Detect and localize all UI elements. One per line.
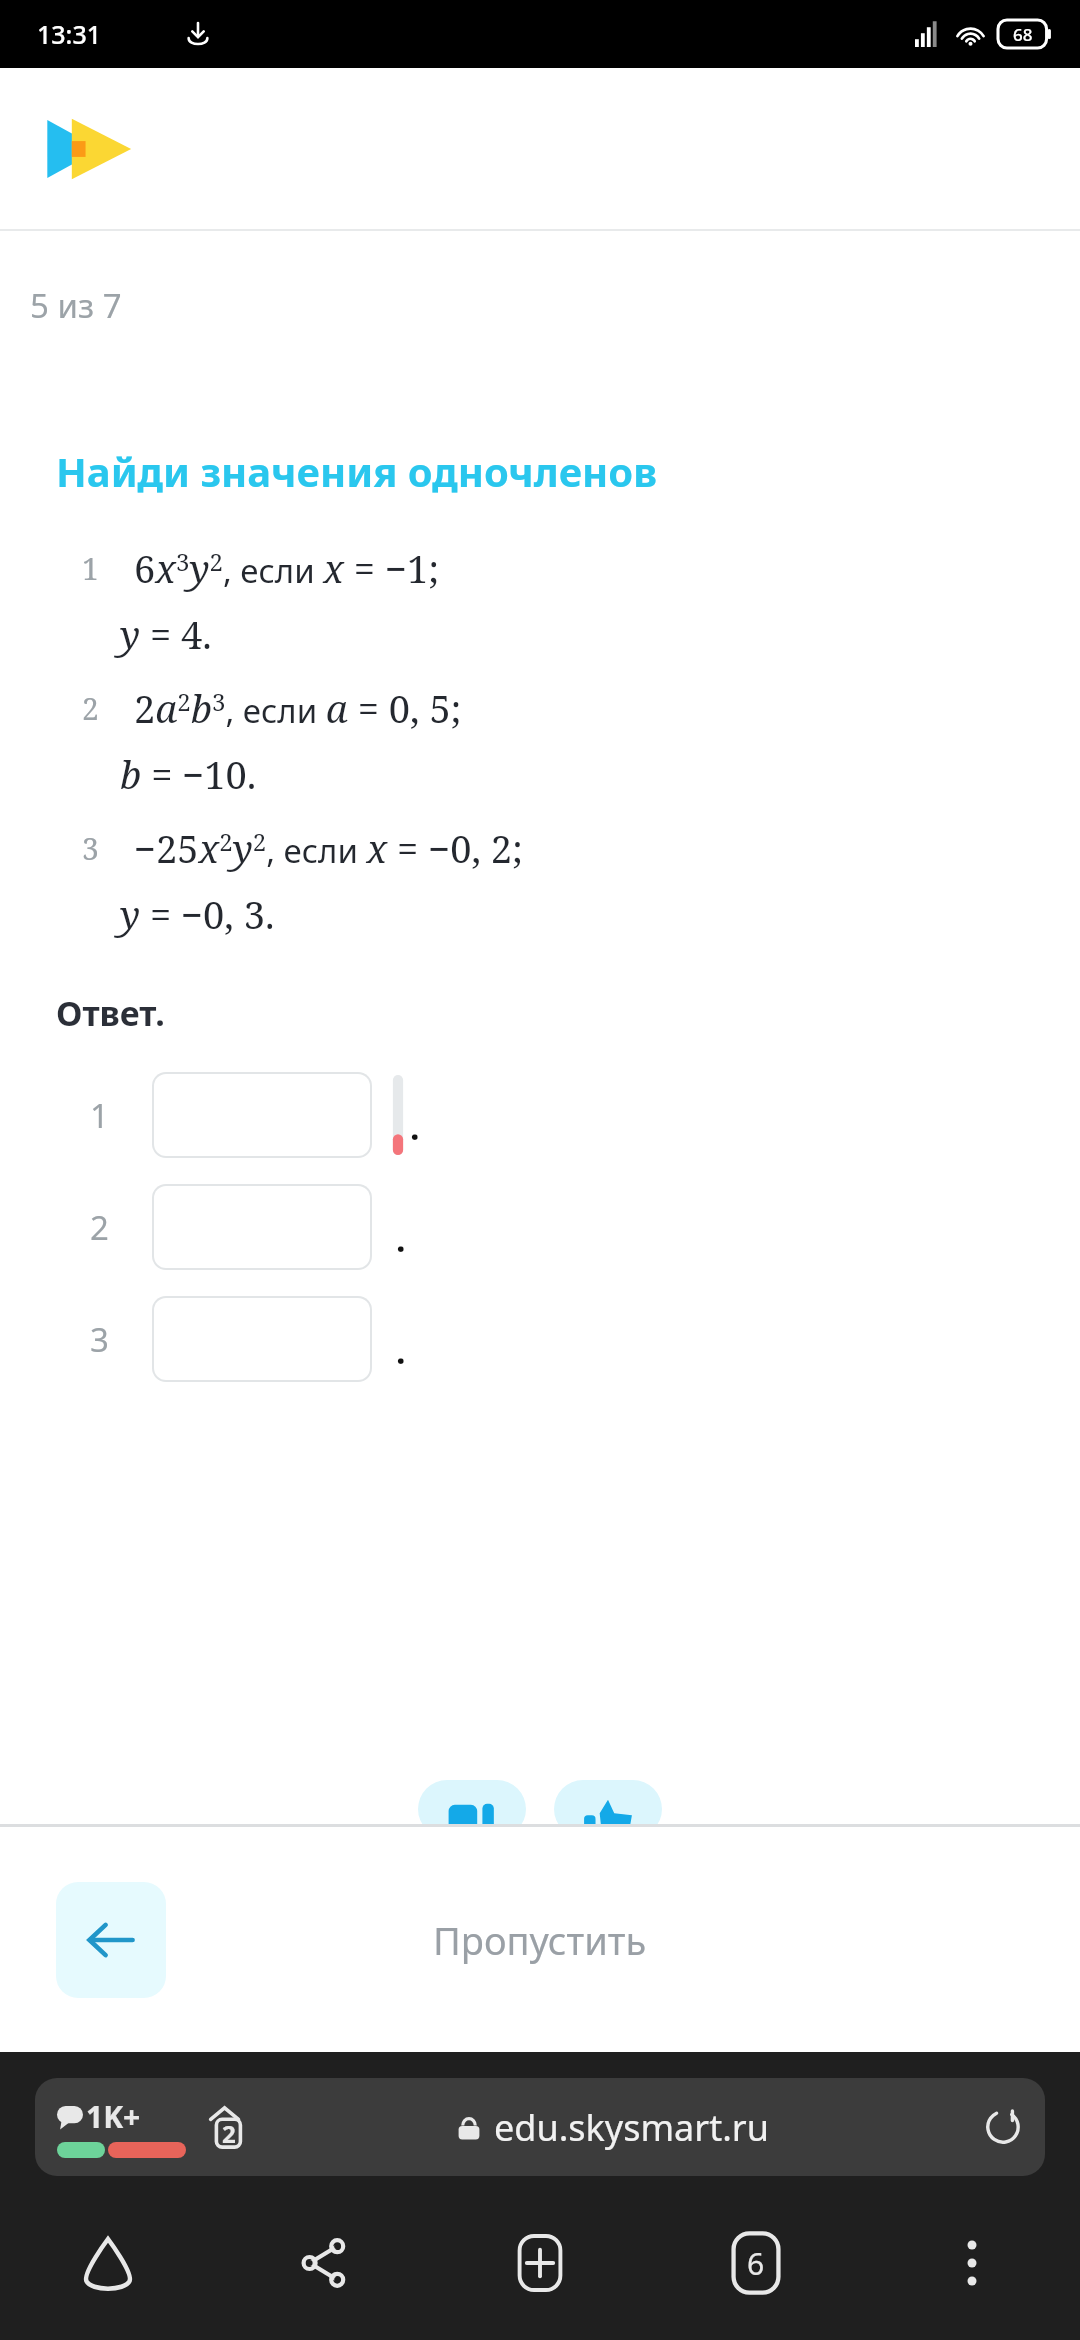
button[interactable]: Обновить [975,2099,1031,2155]
button[interactable]: Вкладки: 6 [723,2230,789,2296]
staticText: 2 [90,1205,109,1250]
staticText: 13:31 [37,17,102,51]
staticText: 2 [222,2117,236,2150]
button[interactable]: Подсказка [418,1780,526,1838]
staticText: 68 [1013,23,1033,46]
button[interactable]: Назад [56,1882,166,1998]
button[interactable]: Пропустить [393,1888,687,1992]
staticText: 6 [747,2243,765,2284]
staticText: 3 [82,828,99,869]
staticText: y = −0, 3. [120,888,275,940]
staticText: −25x2y2, если x = −0, 2; [134,822,523,874]
staticText: 5 из 7 [30,283,122,328]
staticText: 1 [90,1093,109,1138]
staticText: 6x3y2, если x = −1; [134,542,440,594]
staticText: Пропустить [433,1914,647,1966]
button[interactable]: Нравится [554,1780,662,1838]
staticText: . [410,1104,420,1150]
staticText: Найди значения одночленов [56,444,658,498]
button[interactable]: Ещё [936,2227,1008,2299]
staticText: 1 [82,548,99,589]
button[interactable]: Поделиться [288,2227,360,2299]
button[interactable]: Вкладки [202,2103,250,2151]
staticText: 3 [90,1317,109,1362]
staticText: 2 [82,688,99,729]
button[interactable]: 1K+ [35,2078,1045,2176]
staticText: b = −10. [120,748,257,800]
staticText: . [396,1328,406,1374]
staticText: y = 4. [120,608,212,660]
staticText: Ответ. [56,990,165,1036]
staticText: 2a2b3, если a = 0, 5; [134,682,462,734]
staticText: . [396,1216,406,1262]
staticText: 1K+ [86,2096,141,2137]
button[interactable]: Главная [72,2227,144,2299]
staticText: edu.skysmart.ru [494,2103,769,2152]
button[interactable]: Новая вкладка [504,2227,576,2299]
